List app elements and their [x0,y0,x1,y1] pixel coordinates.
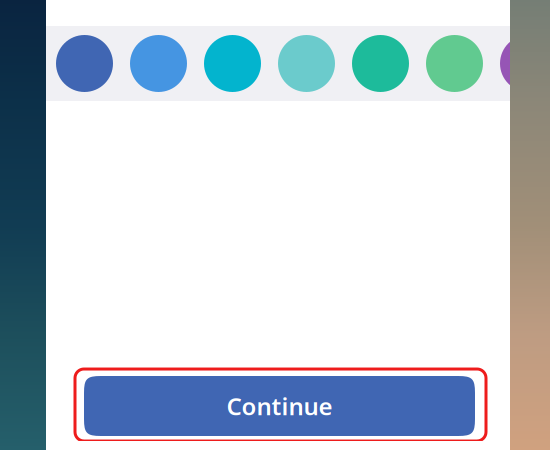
button[interactable]: Select colour 1 [56,35,113,92]
button[interactable]: Continue [75,369,486,441]
button[interactable]: Select colour 6 [426,35,483,92]
staticText: Continue [226,390,332,422]
button[interactable]: Select colour 2 [130,35,187,92]
button[interactable]: Select colour 4 [278,35,335,92]
button[interactable]: Select colour 3 [204,35,261,92]
button[interactable]: Select colour 7 [500,35,550,92]
button[interactable]: Select colour 5 [352,35,409,92]
